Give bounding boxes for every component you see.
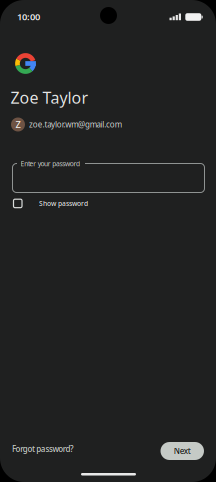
staticText: Next [174,446,191,456]
button[interactable]: Enter your password [12,160,204,193]
button[interactable]: Next [160,442,204,460]
button[interactable]: Show password [13,199,88,208]
staticText: Show password [39,199,88,208]
staticText: 10:00 [17,10,40,23]
staticText: Z [15,118,20,131]
staticText: Zoe Taylor [10,87,88,108]
staticText: Forgot password? [12,443,74,454]
staticText: zoe.taylor.wm@gmail.com [29,119,122,130]
staticText: Enter your password [20,159,80,168]
button[interactable]: Forgot password? [12,443,74,454]
button[interactable]: Z [11,117,122,131]
